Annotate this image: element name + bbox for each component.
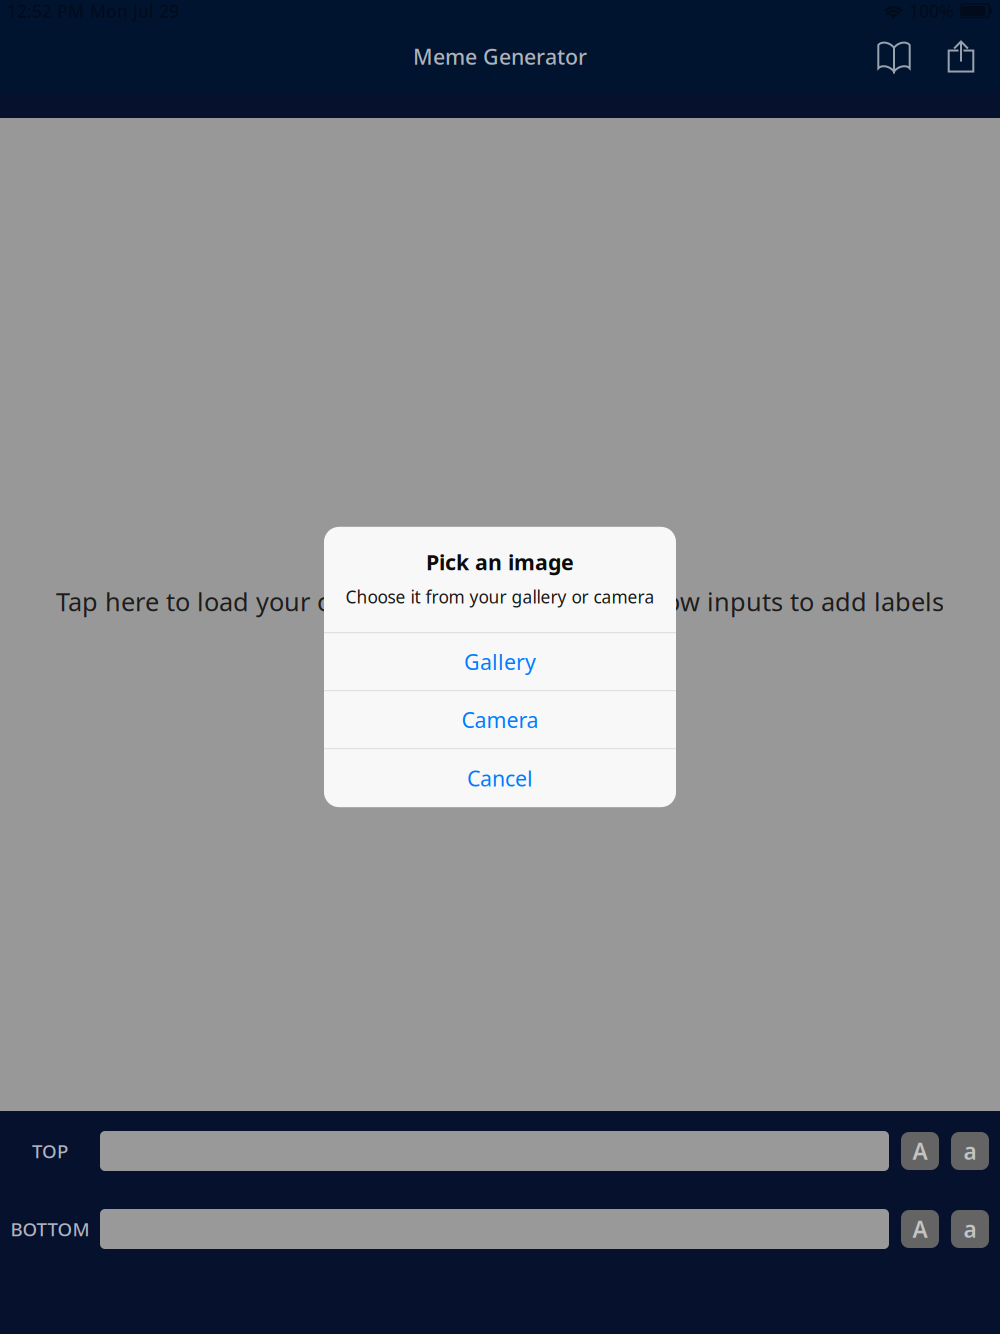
- staticText: Gallery: [464, 647, 536, 676]
- staticText: Tap here to load your own picture or tap…: [56, 585, 944, 618]
- staticText: Meme Generator: [413, 42, 587, 71]
- staticText: Cancel: [467, 764, 533, 792]
- button[interactable]: TOP caption text field: [100, 1131, 889, 1171]
- button[interactable]: BOTTOM caption text field: [100, 1209, 889, 1249]
- button[interactable]: Camera: [324, 691, 676, 748]
- button[interactable]: Increase TOP text size: [901, 1132, 939, 1170]
- button[interactable]: Gallery: [324, 633, 676, 690]
- button[interactable]: Cancel: [324, 749, 676, 807]
- staticText: Camera: [461, 705, 538, 734]
- button[interactable]: Increase BOTTOM text size: [901, 1210, 939, 1248]
- staticText: a: [963, 1214, 976, 1244]
- staticText: A: [912, 1214, 927, 1244]
- staticText: a: [963, 1136, 976, 1166]
- staticText: Mon Jul 29: [90, 0, 179, 22]
- staticText: 12:52 PM: [7, 0, 84, 22]
- button[interactable]: Saved memes: [856, 26, 932, 86]
- staticText: Pick an image: [426, 548, 574, 576]
- staticText: Choose it from your gallery or camera: [345, 585, 654, 608]
- button[interactable]: Decrease BOTTOM text size: [951, 1210, 989, 1248]
- staticText: TOP: [32, 1139, 68, 1163]
- button[interactable]: Decrease TOP text size: [951, 1132, 989, 1170]
- staticText: 100%: [909, 0, 954, 22]
- staticText: BOTTOM: [10, 1217, 89, 1241]
- staticText: A: [912, 1136, 927, 1166]
- button[interactable]: Share: [932, 26, 990, 86]
